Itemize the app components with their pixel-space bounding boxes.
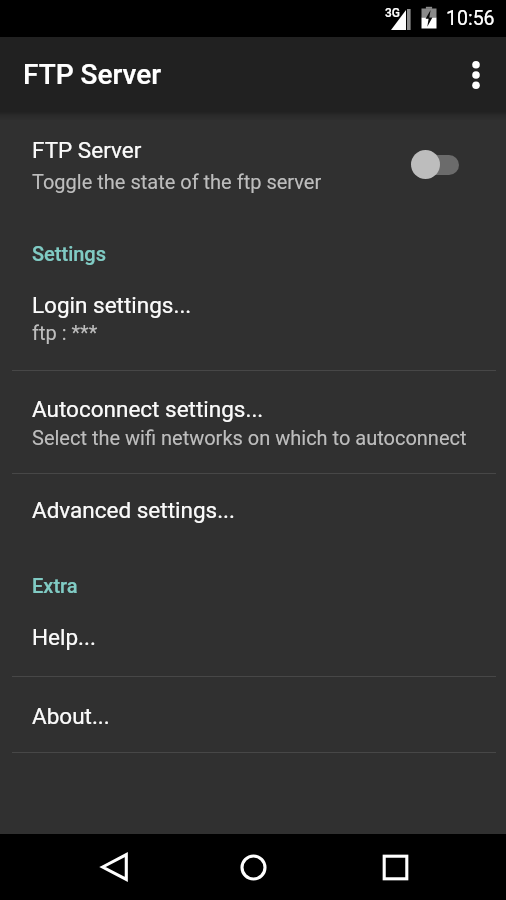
staticText: 10:56	[446, 7, 495, 30]
staticText: Extra	[32, 574, 78, 597]
button[interactable]: More options	[448, 47, 504, 103]
staticText: FTP Server	[32, 137, 142, 163]
staticText: Autoconnect settings...	[32, 396, 264, 422]
staticText: Advanced settings...	[32, 497, 235, 523]
button[interactable]: Autoconnect settings...	[0, 371, 506, 473]
staticText: Toggle the state of the ftp server	[32, 170, 322, 193]
button[interactable]: FTP Server	[0, 128, 506, 208]
button[interactable]: Login settings...	[0, 283, 506, 370]
button[interactable]: Back	[81, 834, 147, 900]
staticText: Select the wifi networks on which to aut…	[32, 426, 467, 449]
button[interactable]: Recent apps	[362, 834, 428, 900]
staticText: ftp : ***	[32, 321, 98, 344]
staticText: About...	[32, 703, 110, 729]
button[interactable]: Toggle FTP server, off	[400, 141, 472, 189]
button[interactable]: Home	[220, 834, 286, 900]
staticText: FTP Server	[23, 58, 162, 91]
button[interactable]: About...	[0, 677, 506, 752]
staticText: Login settings...	[32, 292, 192, 318]
staticText: Settings	[32, 242, 107, 265]
button[interactable]: Advanced settings...	[0, 474, 506, 548]
button[interactable]: Help...	[0, 612, 506, 676]
staticText: Help...	[32, 624, 96, 650]
staticText: 3G	[385, 6, 400, 20]
